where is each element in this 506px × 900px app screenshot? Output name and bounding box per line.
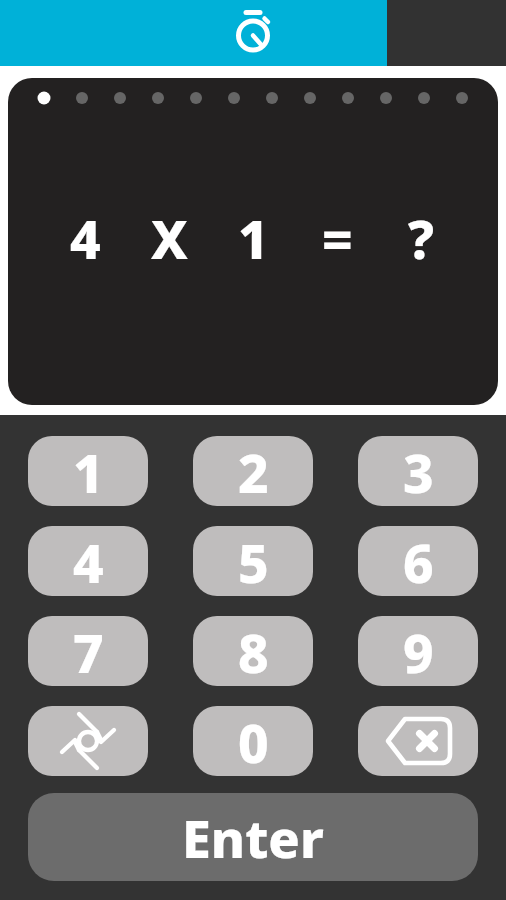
staticText: 8 bbox=[238, 616, 269, 686]
button[interactable] bbox=[28, 706, 148, 776]
staticText: 2 bbox=[238, 436, 269, 506]
staticText: 1 bbox=[238, 202, 269, 274]
staticText: X bbox=[151, 202, 188, 274]
staticText: 9 bbox=[403, 616, 434, 686]
button[interactable]: 3 bbox=[358, 436, 478, 506]
button[interactable]: 2 bbox=[193, 436, 313, 506]
button[interactable]: 1 bbox=[28, 436, 148, 506]
button[interactable]: 0 bbox=[193, 706, 313, 776]
staticText: 4 bbox=[70, 202, 101, 274]
staticText: 3 bbox=[403, 436, 434, 506]
button[interactable]: 6 bbox=[358, 526, 478, 596]
button[interactable]: 4 bbox=[28, 526, 148, 596]
button[interactable]: 9 bbox=[358, 616, 478, 686]
staticText: 6 bbox=[403, 526, 434, 596]
staticText: Enter bbox=[182, 802, 324, 873]
staticText: ? bbox=[408, 202, 434, 274]
staticText: 5 bbox=[238, 526, 269, 596]
button[interactable] bbox=[358, 706, 478, 776]
staticText: 7 bbox=[73, 616, 104, 686]
button[interactable]: 8 bbox=[193, 616, 313, 686]
button[interactable] bbox=[0, 0, 387, 66]
button[interactable]: 5 bbox=[193, 526, 313, 596]
staticText: = bbox=[322, 202, 353, 274]
button[interactable]: 7 bbox=[28, 616, 148, 686]
staticText: 1 bbox=[73, 436, 104, 506]
staticText: 0 bbox=[238, 706, 269, 776]
staticText: 4 bbox=[73, 526, 104, 596]
button[interactable]: Enter bbox=[28, 793, 478, 881]
